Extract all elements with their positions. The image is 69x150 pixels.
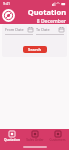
staticText: 8 December [36, 18, 66, 24]
staticText: To Date [36, 27, 50, 32]
staticText: Quotation [27, 7, 66, 17]
staticText: Sales Order [26, 138, 44, 142]
staticText: 9:41 [3, 1, 10, 6]
staticText: Customers [49, 138, 66, 142]
button[interactable]: Search [23, 46, 47, 53]
button[interactable]: Sales Order [23, 129, 46, 144]
button[interactable]: To Date [36, 27, 64, 35]
button[interactable]: Customers [46, 129, 69, 144]
staticText: From Date [5, 27, 24, 32]
staticText: Search [28, 47, 42, 52]
button[interactable]: From Date [5, 27, 33, 35]
button[interactable]: Company logo [2, 9, 15, 22]
button[interactable]: Quotation [0, 129, 23, 144]
staticText: Quotation [4, 138, 20, 142]
